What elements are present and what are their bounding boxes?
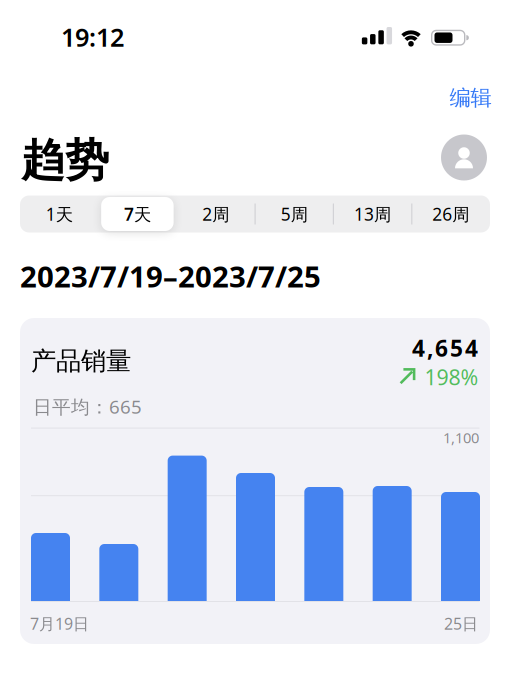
staticText: 2023/7/19–2023/7/25 (20, 256, 321, 295)
button[interactable]: 2周 (178, 195, 254, 232)
staticText: 13周 (354, 202, 391, 225)
staticText: 5周 (281, 202, 308, 225)
button[interactable]: 产品销量 (20, 318, 490, 644)
staticText: 26周 (432, 202, 469, 225)
staticText: 25日 (444, 613, 478, 634)
button[interactable]: 13周 (334, 195, 410, 232)
button[interactable]: 5周 (256, 195, 332, 232)
staticText: 趋势 (21, 133, 109, 187)
staticText: 198% (425, 363, 479, 391)
staticText: 编辑 (449, 85, 491, 111)
staticText: 1天 (46, 202, 73, 225)
button[interactable]: 26周 (413, 195, 489, 232)
staticText: 1,100 (443, 428, 479, 447)
staticText: 19:12 (61, 20, 124, 54)
button[interactable]: 编辑 (391, 85, 491, 111)
staticText: 2周 (202, 202, 229, 225)
button[interactable]: 个人资料 (441, 134, 487, 180)
button[interactable]: 1天 (21, 195, 97, 232)
staticText: 4,654 (412, 333, 478, 363)
staticText: 7月19日 (30, 613, 89, 634)
staticText: 日平均：665 (33, 394, 142, 419)
button[interactable]: 7天 (101, 197, 174, 231)
staticText: 7天 (124, 202, 151, 225)
staticText: 产品销量 (31, 345, 131, 376)
